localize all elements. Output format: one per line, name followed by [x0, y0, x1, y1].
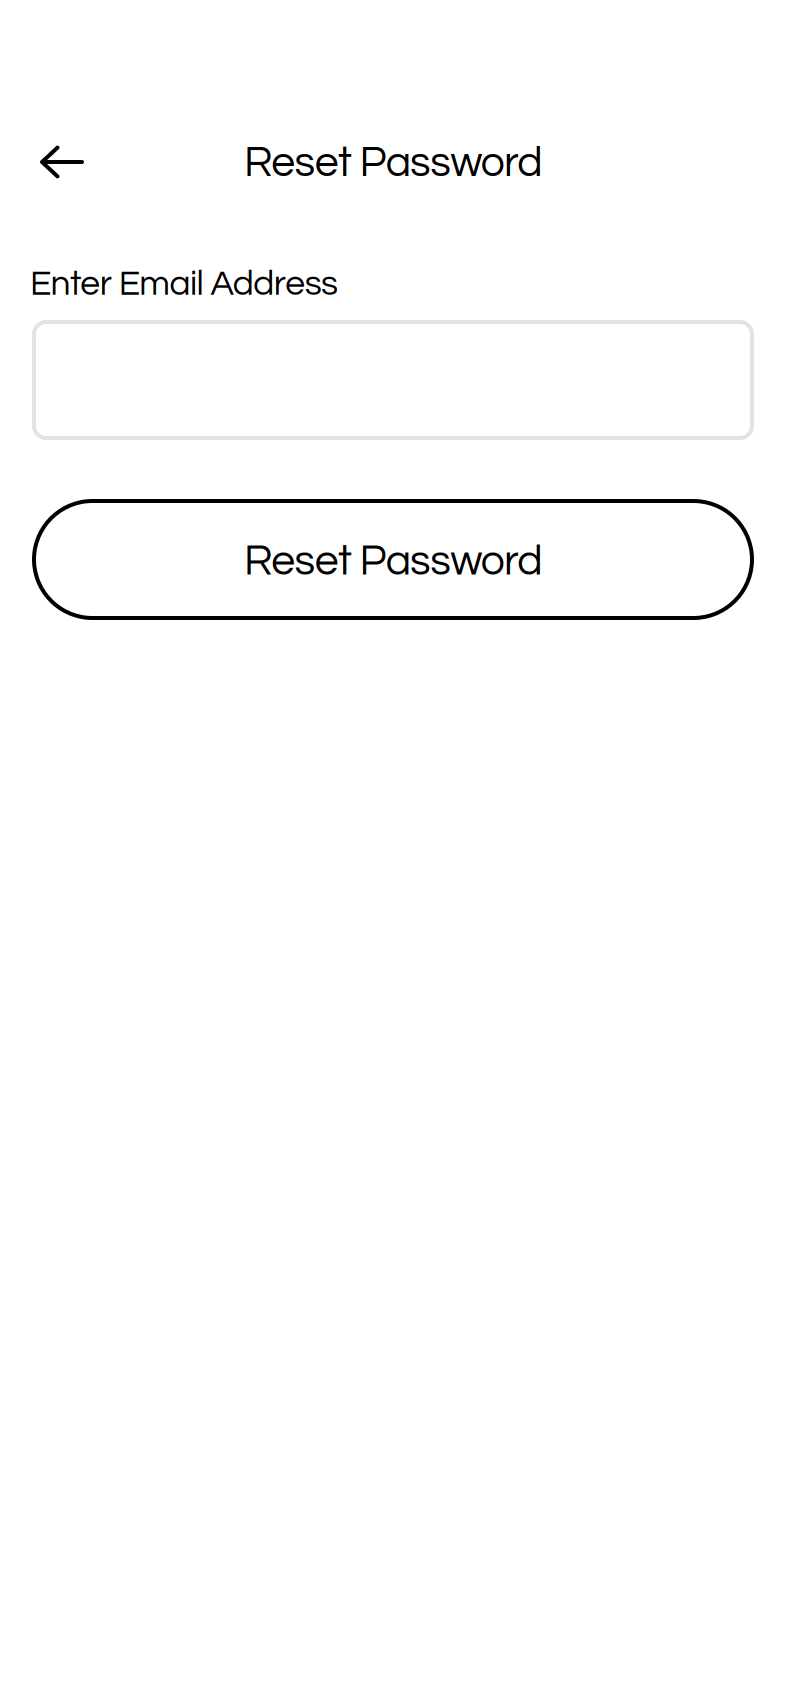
- staticText: Reset Password: [244, 141, 542, 185]
- button[interactable]: Reset Password: [32, 501, 754, 618]
- staticText: Enter Email Address: [30, 266, 338, 302]
- textField[interactable]: [32, 322, 754, 438]
- button[interactable]: Back: [19, 119, 105, 205]
- staticText: Reset Password: [244, 539, 542, 583]
